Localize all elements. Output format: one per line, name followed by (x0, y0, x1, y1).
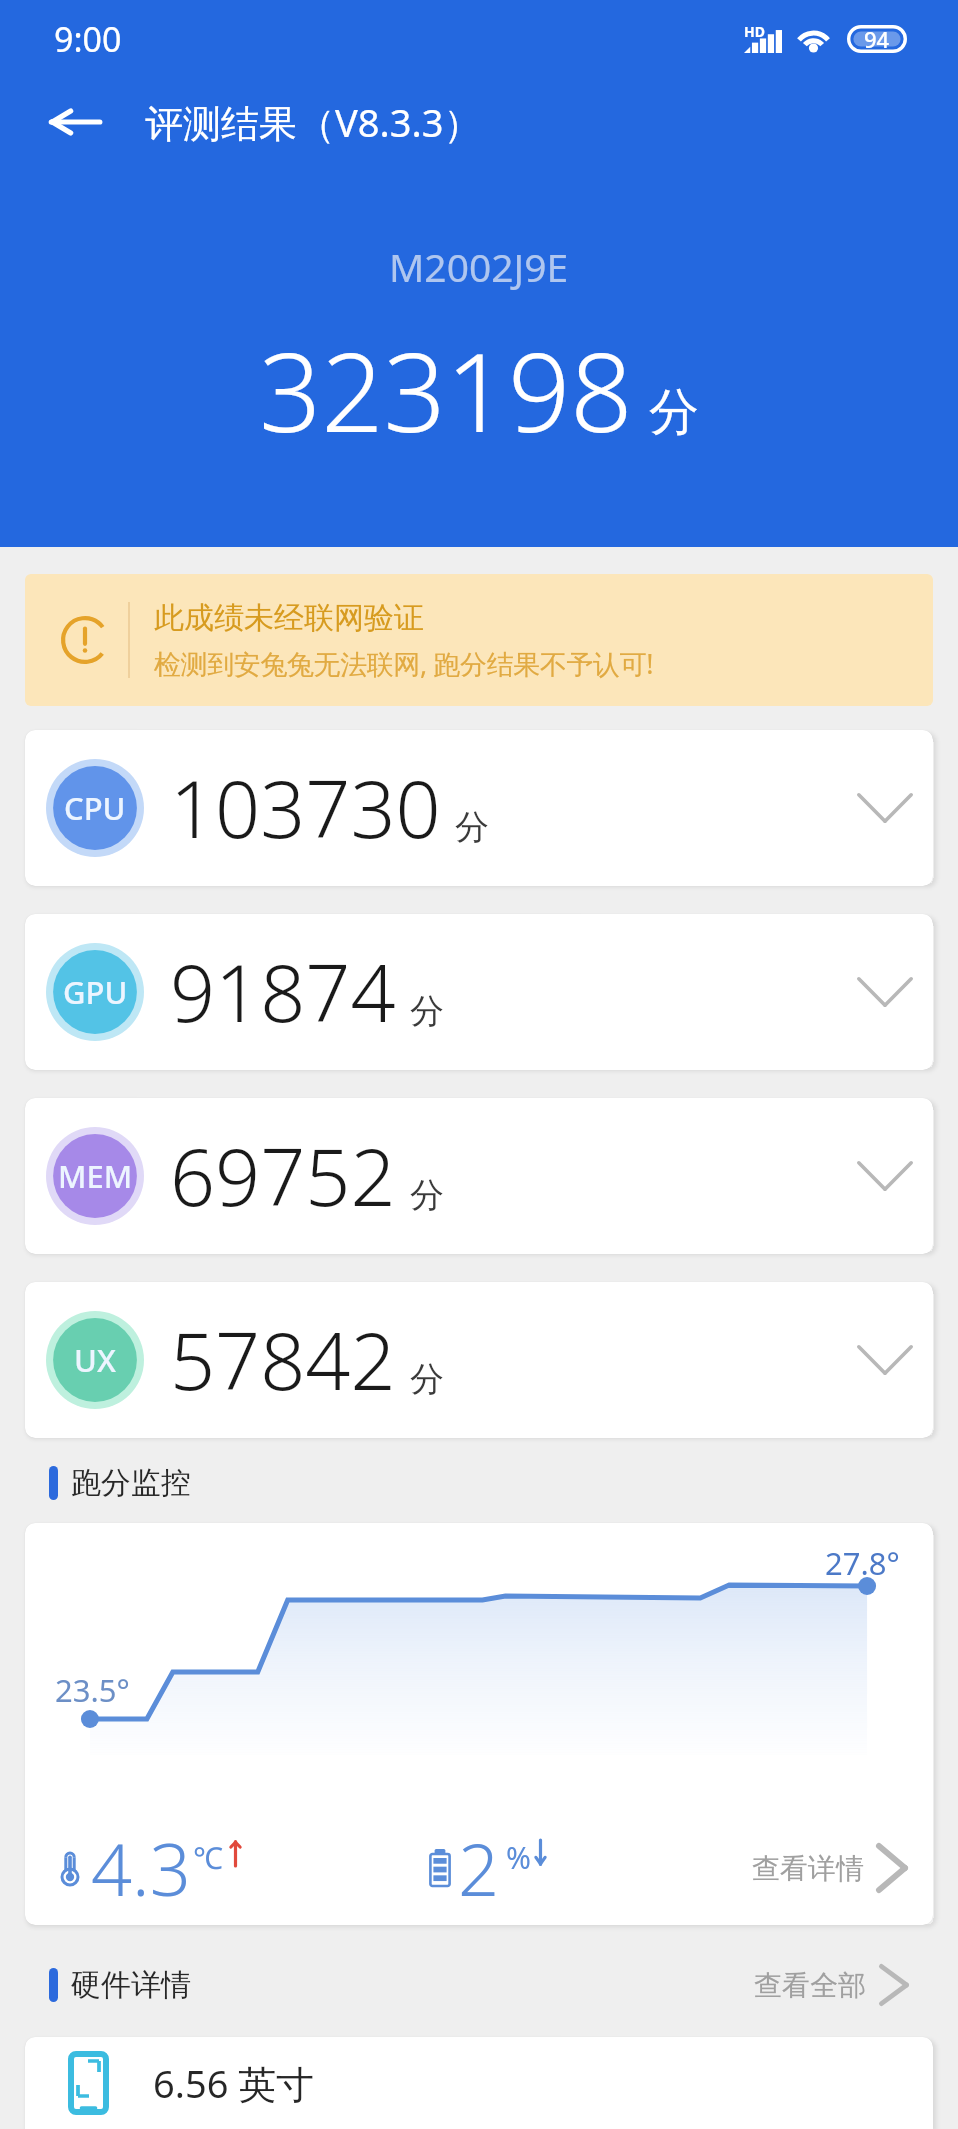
staticText: UX (74, 1339, 116, 1381)
staticText: 跑分监控 (71, 1464, 191, 1502)
staticText: 分 (410, 990, 444, 1033)
staticText: 323198 (259, 315, 633, 463)
button[interactable]: 6.56 英寸 (25, 2037, 933, 2129)
staticText: 6.56 英寸 (153, 2057, 315, 2109)
staticText: 评测结果（V8.3.3） (145, 96, 482, 148)
staticText: ℃ (193, 1837, 223, 1878)
staticText: 分 (410, 1174, 444, 1217)
button[interactable]: CPU (25, 730, 933, 886)
staticText: 查看全部 (754, 1968, 866, 2003)
staticText: 94 (864, 24, 890, 54)
staticText: 23.5° (55, 1669, 130, 1711)
staticText: 57842 (170, 1306, 396, 1414)
staticText: 9:00 (54, 16, 122, 62)
staticText: % (506, 1837, 531, 1878)
staticText: 检测到安兔兔无法联网, 跑分结果不予认可! (154, 645, 654, 682)
button[interactable]: MEM (25, 1098, 933, 1254)
button[interactable]: GPU (25, 914, 933, 1070)
staticText: 分 (649, 381, 699, 444)
button[interactable]: 查看详情 (752, 1843, 908, 1893)
button[interactable]: Back (33, 80, 117, 164)
staticText: HD (744, 22, 765, 41)
staticText: 69752 (170, 1122, 396, 1230)
staticText: 27.8° (825, 1542, 900, 1584)
staticText: CPU (64, 787, 126, 829)
staticText: MEM (58, 1155, 133, 1197)
button[interactable]: 查看全部 (754, 1964, 909, 2006)
staticText: M2002J9E (389, 240, 569, 293)
staticText: 2 (458, 1819, 500, 1917)
staticText: 4.3 (91, 1819, 191, 1917)
button[interactable]: UX (25, 1282, 933, 1438)
staticText: 此成绩未经联网验证 (154, 599, 424, 637)
staticText: GPU (63, 971, 128, 1013)
staticText: 91874 (170, 938, 396, 1046)
staticText: 分 (410, 1358, 444, 1401)
staticText: 查看详情 (752, 1851, 864, 1886)
staticText: 103730 (170, 754, 441, 862)
staticText: 分 (455, 806, 489, 849)
staticText: 硬件详情 (71, 1966, 191, 2004)
button[interactable]: 此成绩未经联网验证 (25, 574, 933, 706)
